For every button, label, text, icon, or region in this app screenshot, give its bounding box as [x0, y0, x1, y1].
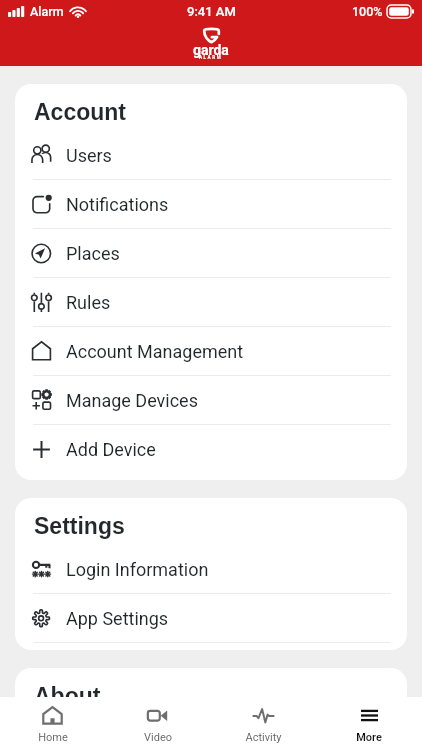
button[interactable]: Manage Devices: [15, 376, 407, 424]
staticText: Rules: [66, 292, 111, 313]
staticText: Video: [144, 731, 172, 744]
button[interactable]: Users: [15, 131, 407, 179]
staticText: Add Device: [66, 439, 156, 460]
button[interactable]: Places: [15, 229, 407, 277]
staticText: Users: [66, 145, 112, 166]
staticText: 9:41 AM: [187, 4, 236, 19]
button[interactable]: Add Device: [15, 425, 407, 473]
button[interactable]: Legal: [15, 715, 407, 750]
staticText: Account Management: [66, 341, 244, 362]
staticText: Places: [66, 243, 120, 264]
staticText: Account: [34, 99, 126, 125]
staticText: Notifications: [66, 194, 169, 215]
button[interactable]: Account Management: [15, 327, 407, 375]
staticText: Activity: [245, 731, 282, 744]
staticText: Login Information: [66, 559, 209, 580]
button[interactable]: Activity: [210, 697, 316, 750]
staticText: Settings: [34, 513, 125, 539]
button[interactable]: Login Information: [15, 545, 407, 593]
staticText: Home: [38, 731, 68, 744]
staticText: More: [356, 731, 382, 744]
staticText: Alarm: [30, 4, 64, 19]
staticText: Legal: [66, 722, 110, 743]
staticText: ALARM: [199, 55, 223, 60]
button[interactable]: Video: [105, 697, 210, 750]
button[interactable]: App Settings: [15, 594, 407, 642]
staticText: garda: [193, 42, 229, 58]
staticText: App Settings: [66, 608, 169, 629]
button[interactable]: More: [316, 697, 422, 750]
staticText: Manage Devices: [66, 390, 198, 411]
staticText: 100%: [352, 4, 383, 19]
button[interactable]: Home: [0, 697, 105, 750]
staticText: About: [34, 683, 101, 709]
button[interactable]: Notifications: [15, 180, 407, 228]
button[interactable]: Rules: [15, 278, 407, 326]
